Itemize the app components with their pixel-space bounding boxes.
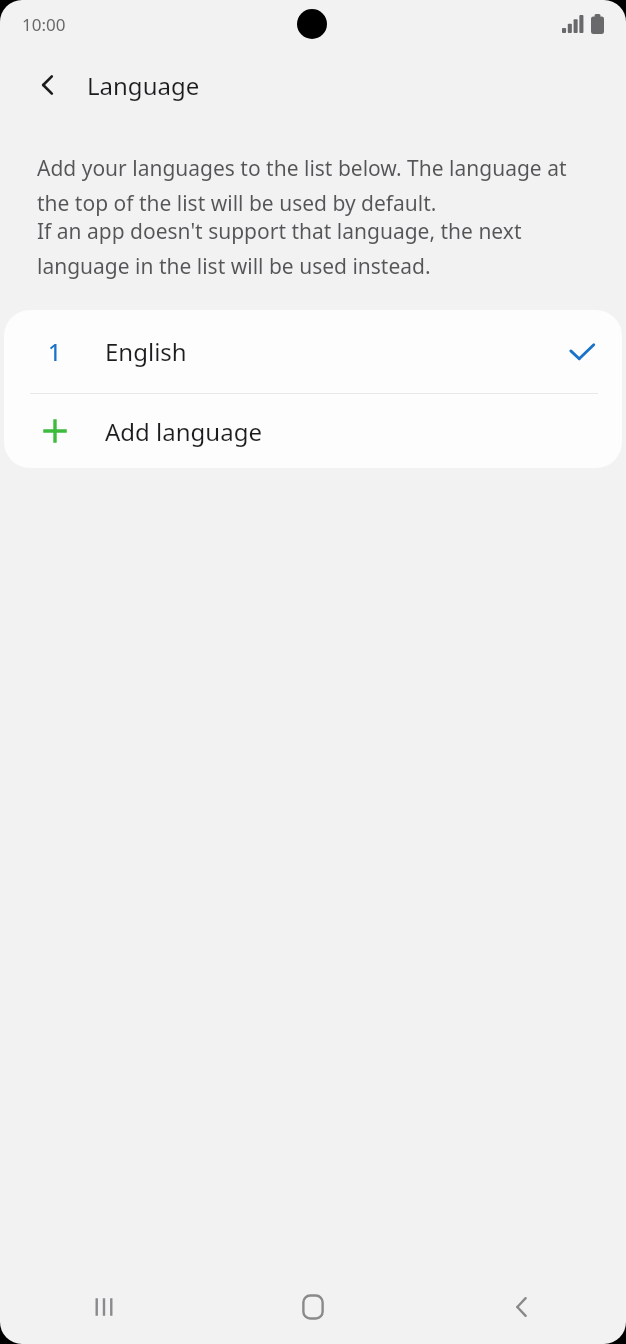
staticText: Add your languages to the list below. Th… [37,154,596,217]
button[interactable]: Back [417,1270,626,1344]
staticText: If an app doesn't support that language,… [37,217,596,280]
staticText: English [105,335,187,368]
button[interactable]: Home [208,1270,417,1344]
button[interactable]: 1 [4,310,622,393]
button[interactable]: Back [22,59,74,111]
staticText: 1 [48,336,62,367]
staticText: Language [87,69,200,102]
staticText: 10:00 [22,13,66,36]
button[interactable]: Recents [0,1270,208,1344]
button[interactable]: Add language [4,394,622,468]
staticText: Add language [105,415,262,448]
